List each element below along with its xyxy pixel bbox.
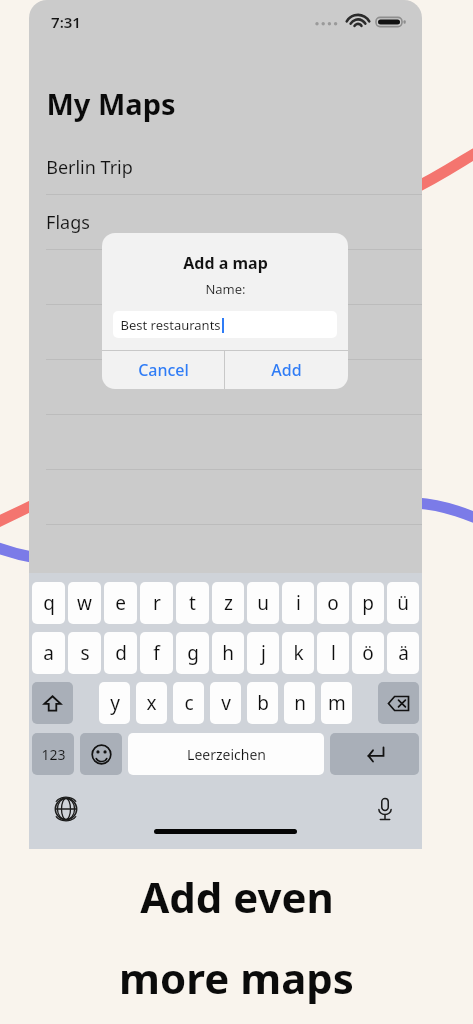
staticText: d <box>115 640 127 666</box>
staticText: n <box>294 690 306 716</box>
staticText: w <box>77 590 92 616</box>
staticText: b <box>257 690 269 716</box>
staticText: Add a map <box>183 252 268 274</box>
button[interactable]: Berlin Trip <box>29 140 422 195</box>
button[interactable]: w <box>68 582 101 624</box>
staticText: Add <box>271 359 302 381</box>
staticText: Leerzeichen <box>187 745 266 764</box>
staticText: g <box>187 640 199 666</box>
button[interactable]: q <box>32 582 65 624</box>
button[interactable]: Cancel <box>102 351 224 389</box>
button[interactable]: e <box>104 582 137 624</box>
button[interactable]: r <box>140 582 173 624</box>
button[interactable]: i <box>282 582 314 624</box>
staticText: m <box>328 690 346 716</box>
button[interactable]: l <box>317 632 349 674</box>
button[interactable]: d <box>104 632 137 674</box>
staticText: v <box>221 690 231 716</box>
staticText: 7:31 <box>51 12 81 32</box>
button[interactable]: Change keyboard <box>49 792 83 826</box>
staticText: ö <box>362 640 374 666</box>
staticText: r <box>153 590 161 616</box>
staticText: f <box>153 640 160 666</box>
button[interactable]: Leerzeichen <box>128 733 324 775</box>
button[interactable]: n <box>284 682 315 724</box>
button[interactable]: s <box>68 632 101 674</box>
button[interactable]: Dictation <box>368 792 402 826</box>
staticText: u <box>257 590 269 616</box>
staticText: k <box>293 640 304 666</box>
staticText: ü <box>397 590 409 616</box>
staticText: c <box>184 690 194 716</box>
button[interactable]: p <box>352 582 384 624</box>
staticText: Flags <box>46 210 90 235</box>
staticText: Cancel <box>138 359 189 381</box>
button[interactable]: Backspace <box>378 682 419 724</box>
button[interactable]: y <box>99 682 130 724</box>
button[interactable]: 123 <box>32 733 74 775</box>
button[interactable]: x <box>136 682 167 724</box>
button[interactable]: Shift <box>32 682 73 724</box>
button[interactable]: g <box>176 632 209 674</box>
staticText: s <box>80 640 90 666</box>
button[interactable]: ä <box>387 632 419 674</box>
button[interactable]: a <box>32 632 65 674</box>
button[interactable]: ü <box>387 582 419 624</box>
staticText: a <box>43 640 54 666</box>
staticText: o <box>327 590 339 616</box>
staticText: x <box>146 690 157 716</box>
button[interactable] <box>29 250 422 305</box>
button[interactable]: u <box>247 582 279 624</box>
staticText: z <box>224 590 233 616</box>
button[interactable] <box>29 360 422 415</box>
staticText: j <box>261 640 266 666</box>
staticText: 123 <box>41 745 66 764</box>
staticText: Add even <box>140 868 334 925</box>
staticText: My Maps <box>46 84 176 123</box>
button[interactable]: c <box>173 682 204 724</box>
button[interactable]: j <box>247 632 279 674</box>
staticText: Name: <box>205 280 246 298</box>
button[interactable]: Best restaurants <box>113 311 337 338</box>
button[interactable]: k <box>282 632 314 674</box>
staticText: Berlin Trip <box>46 155 133 180</box>
button[interactable] <box>29 305 422 360</box>
button[interactable]: b <box>247 682 278 724</box>
button[interactable]: Add <box>225 351 348 389</box>
button[interactable]: z <box>212 582 244 624</box>
staticText: more maps <box>119 949 354 1006</box>
button[interactable]: Return <box>330 733 419 775</box>
button[interactable]: Emoji <box>80 733 122 775</box>
staticText: q <box>43 590 55 616</box>
staticText: ä <box>398 640 409 666</box>
button[interactable]: f <box>140 632 173 674</box>
staticText: i <box>296 590 301 616</box>
button[interactable]: t <box>176 582 209 624</box>
staticText: t <box>189 590 196 616</box>
staticText: l <box>331 640 336 666</box>
button[interactable]: o <box>317 582 349 624</box>
staticText: e <box>115 590 126 616</box>
button[interactable]: h <box>212 632 244 674</box>
button[interactable]: v <box>210 682 241 724</box>
button[interactable]: m <box>321 682 352 724</box>
button[interactable]: Flags <box>29 195 422 250</box>
button[interactable]: ö <box>352 632 384 674</box>
staticText: h <box>222 640 234 666</box>
staticText: y <box>110 690 120 716</box>
staticText: Best restaurants <box>120 316 221 334</box>
staticText: p <box>362 590 374 616</box>
